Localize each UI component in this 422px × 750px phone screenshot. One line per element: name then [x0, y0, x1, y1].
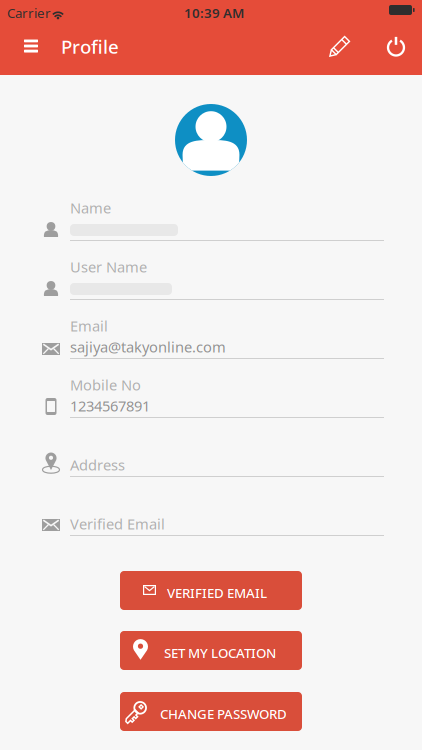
staticText: Carrier	[7, 4, 51, 22]
staticText: Verified Email	[70, 514, 165, 533]
staticText: VERIFIED EMAIL	[167, 584, 267, 602]
button[interactable]: Address	[22, 419, 388, 478]
staticText: 1234567891	[70, 396, 150, 415]
staticText: User Name	[70, 257, 147, 276]
button[interactable]: SET MY LOCATION	[120, 631, 302, 670]
staticText: 10:39 AM	[184, 4, 244, 22]
button[interactable]: CHANGE PASSWORD	[120, 692, 302, 731]
button[interactable]: Log out	[374, 24, 418, 68]
button[interactable]: Email	[22, 301, 388, 360]
button[interactable]: Verified Email	[22, 478, 388, 537]
staticText: Profile	[61, 34, 119, 59]
staticText: Mobile No	[70, 375, 141, 394]
staticText: CHANGE PASSWORD	[160, 705, 287, 723]
button[interactable]: Menu	[11, 24, 51, 68]
button[interactable]: VERIFIED EMAIL	[120, 571, 302, 610]
staticText: sajiya@takyonline.com	[70, 337, 226, 356]
button[interactable]: Mobile No	[22, 360, 388, 419]
button[interactable]: User Name	[22, 242, 388, 301]
button[interactable]: Edit profile	[318, 24, 362, 68]
button[interactable]: Name	[22, 183, 388, 242]
staticText: Email	[70, 316, 108, 335]
staticText: SET MY LOCATION	[164, 644, 276, 662]
staticText: Name	[70, 198, 111, 217]
staticText: Address	[70, 455, 125, 474]
